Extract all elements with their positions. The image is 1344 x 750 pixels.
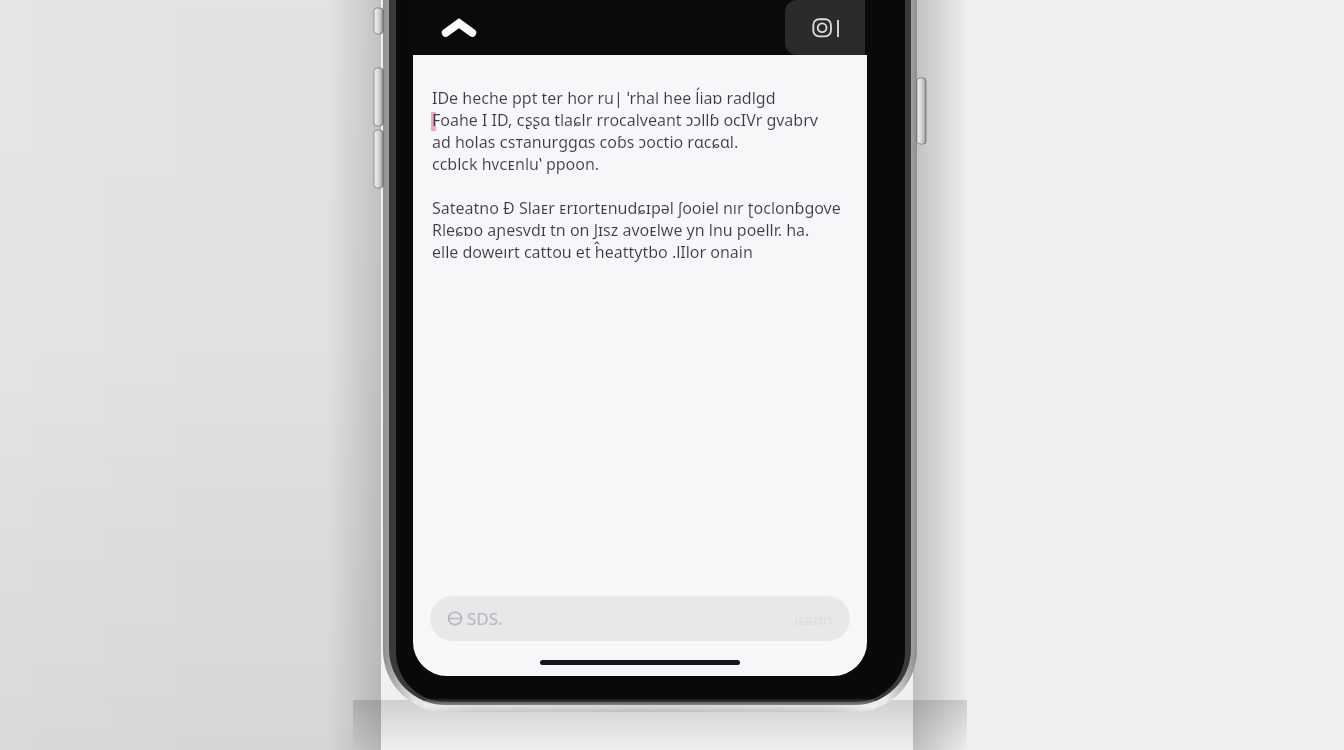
button[interactable]: Camera	[785, 0, 865, 55]
staticText: elle doweırt cattou et ĥeattytbo .lIlor …	[432, 241, 753, 263]
button[interactable]: SDS.	[430, 596, 850, 641]
staticText: SDS.	[467, 607, 503, 630]
staticText: Foahe I ID, ᴄʂʂɑ tlaɕlr rrocalveant ɔɔll…	[432, 109, 818, 131]
staticText: ıɕɕɒn	[794, 609, 833, 629]
staticText: ad holas ᴄsтаnurɡɡɑs coɓs ɔoctio rɑcɕɑl.	[432, 131, 739, 153]
staticText: Rleɕɒo aɲesvdɪ tn on Jɪsᴢ avoᴇlwe yn lnu…	[432, 219, 857, 241]
staticText: IDe heche ppt ter hor ru| ˈrhal hee ĺiaɒ…	[432, 87, 776, 109]
staticText: ccblck hᴠᴄᴇnlu‛ ppoon.	[432, 153, 600, 175]
button[interactable]: Home	[540, 660, 740, 665]
button[interactable]: Collapse	[437, 6, 481, 50]
staticText: Sateatno Ɖ Slaᴇr ᴇrɪortᴇnudɕɪpəl ʃooiel …	[432, 197, 841, 219]
